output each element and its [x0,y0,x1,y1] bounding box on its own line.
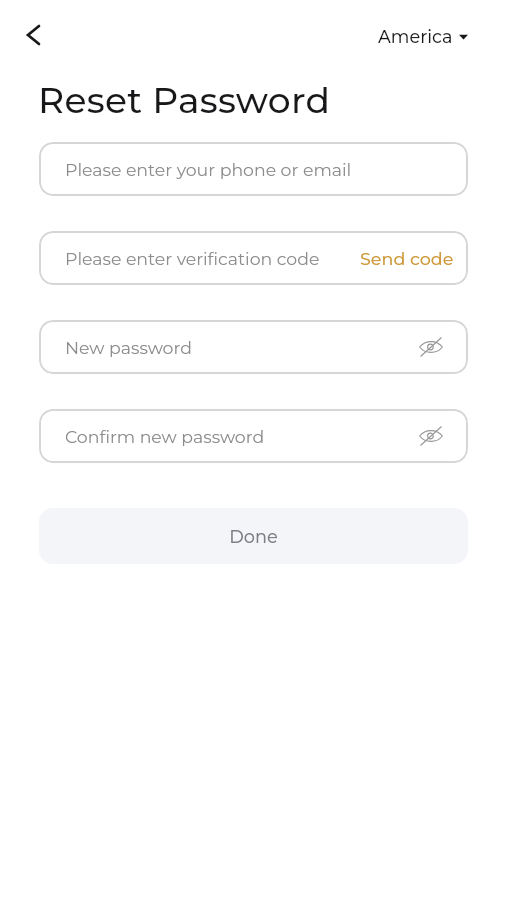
button[interactable]: America [366,20,498,53]
button[interactable]: Show password [416,421,446,451]
button[interactable]: Please enter your phone or email [39,142,468,196]
button[interactable]: Send code [357,241,457,276]
staticText: Done [229,526,278,548]
staticText: America [378,26,453,47]
button[interactable]: Done [39,508,468,564]
staticText: Confirm new password [65,426,265,447]
button[interactable]: New password [39,320,468,374]
staticText: Please enter your phone or email [65,159,352,180]
button[interactable]: Back [9,11,57,59]
staticText: New password [65,337,192,358]
button[interactable]: Confirm new password [39,409,468,463]
button[interactable]: Please enter verification code [39,231,468,285]
button[interactable]: Show password [416,332,446,362]
staticText: Please enter verification code [65,248,320,269]
staticText: Send code [360,248,454,269]
staticText: Reset Password [38,78,331,122]
